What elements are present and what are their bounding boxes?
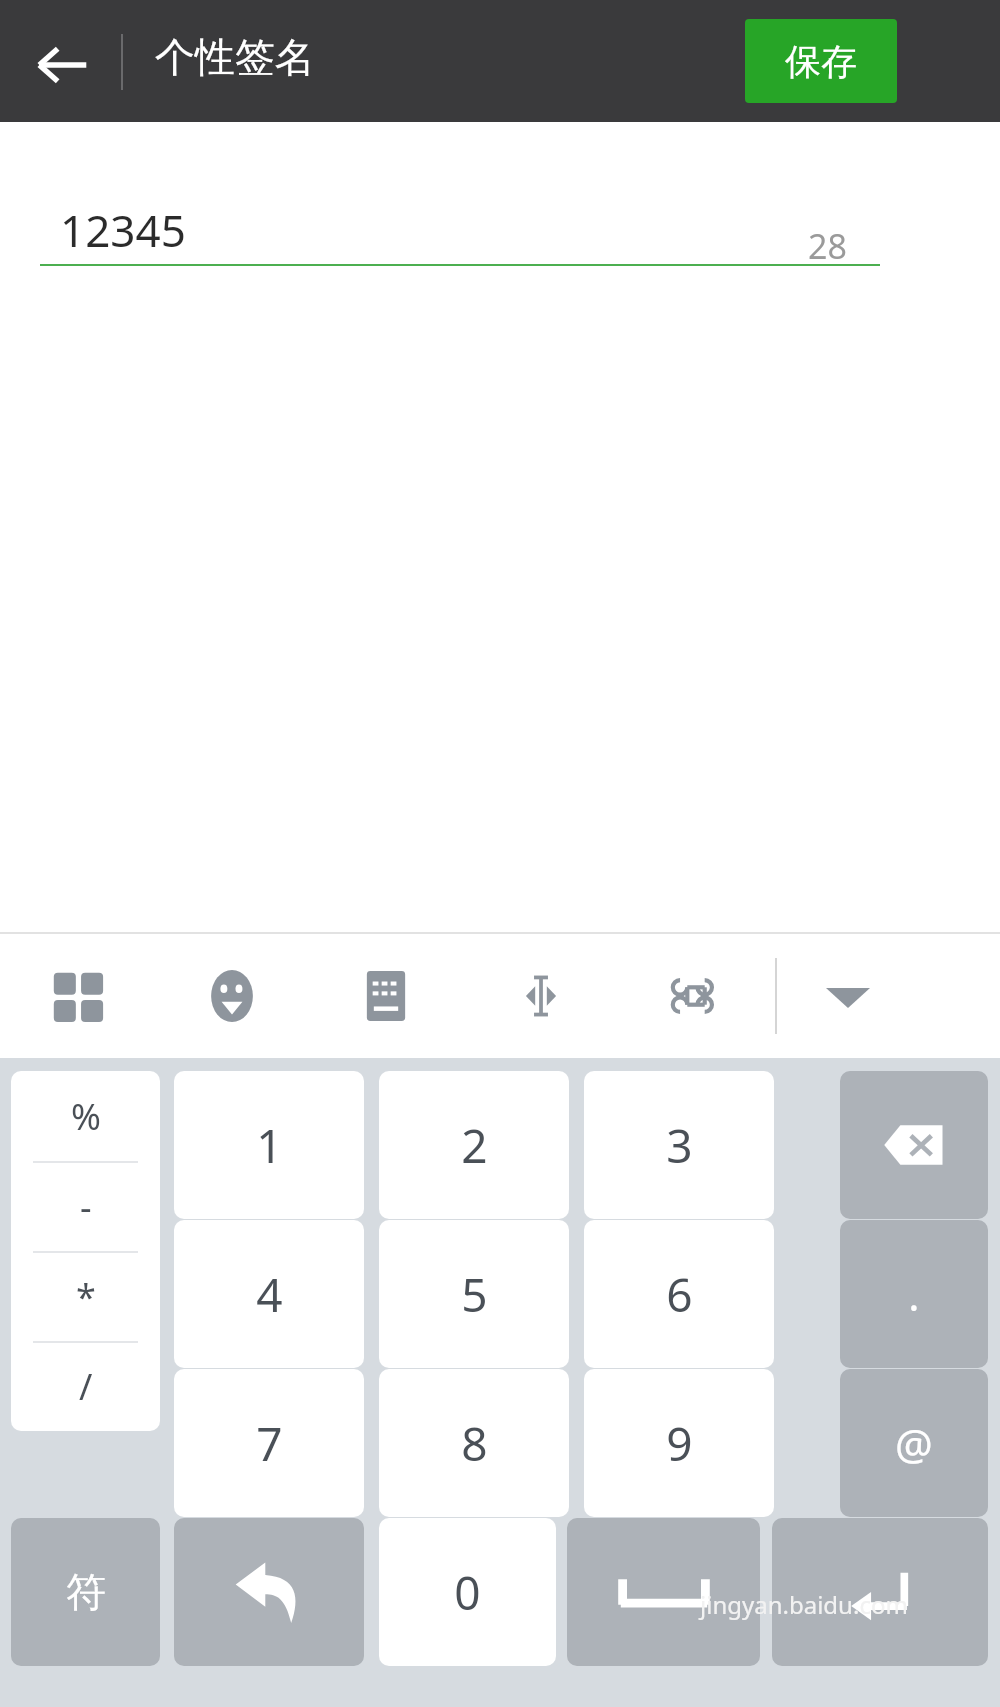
button[interactable]: 符 [11, 1518, 160, 1666]
staticText: * [76, 1272, 96, 1321]
button[interactable]: Enter [772, 1518, 988, 1666]
staticText: 7 [256, 1412, 283, 1475]
staticText: 4 [256, 1263, 283, 1326]
staticText: % [71, 1092, 101, 1141]
button[interactable]: Keyboard [341, 951, 431, 1041]
button[interactable]: 2 [379, 1071, 569, 1219]
button[interactable]: Hide keyboard [803, 951, 893, 1041]
button[interactable]: Emoji [187, 951, 277, 1041]
staticText: 个性签名 [155, 32, 315, 82]
button[interactable]: 9 [584, 1369, 774, 1517]
staticText: 符 [66, 1567, 106, 1617]
button[interactable]: Return [174, 1518, 364, 1666]
staticText: 3 [666, 1114, 693, 1177]
button[interactable]: Backspace [840, 1071, 988, 1219]
button[interactable]: 7 [174, 1369, 364, 1517]
button[interactable]: 6 [584, 1220, 774, 1368]
staticText: . [908, 1266, 920, 1323]
staticText: jingyan.baidu.com [700, 1588, 908, 1621]
button[interactable]: 8 [379, 1369, 569, 1517]
button[interactable]: 5 [379, 1220, 569, 1368]
button[interactable]: % [11, 1071, 160, 1161]
button[interactable]: 1 [174, 1071, 364, 1219]
staticText: 28 [808, 223, 847, 269]
button[interactable]: . [840, 1220, 988, 1368]
staticText: 6 [666, 1263, 693, 1326]
button[interactable]: / [11, 1341, 160, 1431]
button[interactable]: 0 [379, 1518, 556, 1666]
button[interactable]: 3 [584, 1071, 774, 1219]
staticText: @ [895, 1415, 933, 1472]
staticText: - [80, 1182, 92, 1231]
button[interactable]: Shortcuts [651, 951, 741, 1041]
button[interactable]: Panel [32, 951, 122, 1041]
button[interactable]: - [11, 1161, 160, 1251]
staticText: 8 [461, 1412, 488, 1475]
button[interactable]: 保存 [745, 19, 897, 103]
button[interactable]: @ [840, 1369, 988, 1517]
staticText: 1 [256, 1114, 283, 1177]
staticText: 9 [666, 1412, 693, 1475]
button[interactable]: 4 [174, 1220, 364, 1368]
staticText: / [79, 1362, 93, 1411]
button[interactable]: * [11, 1251, 160, 1341]
button[interactable]: Space [567, 1518, 760, 1666]
staticText: 5 [461, 1263, 488, 1326]
staticText: 2 [461, 1114, 488, 1177]
button[interactable]: Cursor [496, 951, 586, 1041]
staticText: 0 [454, 1561, 481, 1624]
staticText: 12345 [60, 200, 186, 260]
staticText: 保存 [785, 39, 857, 84]
button[interactable]: Back [18, 21, 106, 109]
